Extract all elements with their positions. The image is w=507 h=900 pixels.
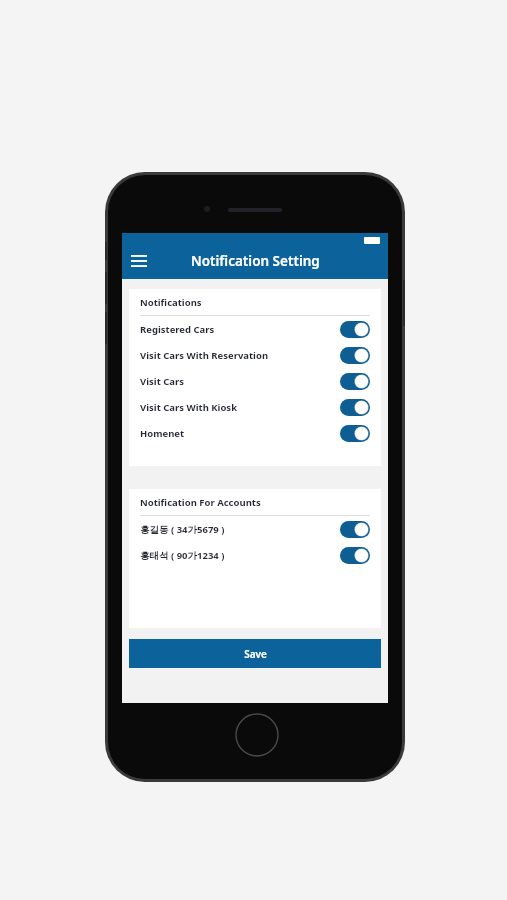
button[interactable]: Registered Cars [129,316,381,342]
staticText: Visit Cars With Kiosk [140,401,340,414]
button[interactable]: Open navigation menu [122,244,156,278]
button[interactable]: Homenet [129,420,381,446]
button[interactable]: Visit Cars [129,368,381,394]
button[interactable]: Visit Cars With Kiosk [129,394,381,420]
staticText: Notification Setting [191,252,320,270]
button[interactable]: 홍태석 ( 90가1234 ) [129,542,381,568]
button[interactable]: Toggle notification [340,521,370,538]
staticText: Notifications [140,296,202,309]
button[interactable]: Toggle notification [340,547,370,564]
staticText: Registered Cars [140,323,340,336]
staticText: 홍태석 ( 90가1234 ) [140,549,340,562]
button[interactable]: Toggle notification [340,373,370,390]
staticText: Notification For Accounts [140,496,261,509]
button[interactable]: Toggle notification [340,321,370,338]
button[interactable]: Toggle notification [340,425,370,442]
staticText: Save [244,647,267,661]
button[interactable]: Toggle notification [340,347,370,364]
button[interactable]: Toggle notification [340,399,370,416]
button[interactable]: 홍길동 ( 34가5679 ) [129,516,381,542]
staticText: Visit Cars [140,375,340,388]
staticText: 홍길동 ( 34가5679 ) [140,523,340,536]
staticText: Visit Cars With Reservation [140,349,340,362]
staticText: Homenet [140,427,340,440]
button[interactable]: Visit Cars With Reservation [129,342,381,368]
button[interactable]: Save [129,639,381,668]
